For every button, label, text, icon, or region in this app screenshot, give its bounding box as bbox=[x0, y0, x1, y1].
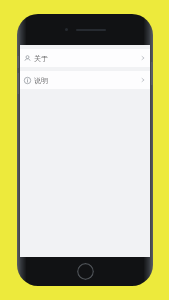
button[interactable]: 关于 bbox=[20, 49, 150, 67]
button[interactable]: Home bbox=[77, 263, 94, 280]
button[interactable]: 说明 bbox=[20, 71, 150, 89]
staticText: 说明 bbox=[34, 76, 48, 85]
staticText: 关于 bbox=[34, 54, 48, 63]
